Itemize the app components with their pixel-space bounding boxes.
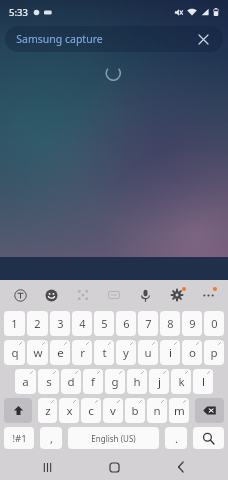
button[interactable]: x: [59, 398, 79, 423]
staticText: z: [45, 403, 51, 419]
staticText: x: [66, 403, 73, 419]
button[interactable]: Clear search: [194, 30, 212, 48]
button[interactable]: Shift: [4, 398, 32, 423]
staticText: j: [158, 374, 161, 390]
staticText: 4: [79, 316, 86, 331]
button[interactable]: j: [149, 369, 169, 394]
button[interactable]: 6: [116, 311, 136, 336]
button[interactable]: 1: [4, 311, 25, 336]
button[interactable]: ,: [40, 427, 62, 449]
button[interactable]: 5: [94, 311, 114, 336]
staticText: o: [189, 345, 196, 361]
staticText: 5:33: [9, 6, 28, 19]
button[interactable]: m: [169, 398, 189, 423]
button[interactable]: v: [103, 398, 123, 423]
staticText: 9: [189, 316, 196, 331]
button[interactable]: s: [38, 369, 59, 394]
button[interactable]: Voice input: [134, 284, 156, 306]
button[interactable]: Clipboard: [103, 284, 125, 306]
staticText: 5: [101, 316, 108, 331]
button[interactable]: a: [15, 369, 36, 394]
button[interactable]: o: [182, 340, 202, 365]
button[interactable]: Emoji: [40, 284, 62, 306]
staticText: y: [123, 345, 129, 361]
staticText: !#1: [12, 432, 27, 445]
button[interactable]: Search: [193, 427, 224, 449]
staticText: q: [11, 345, 19, 361]
button[interactable]: q: [4, 340, 25, 365]
staticText: 1: [11, 316, 18, 331]
staticText: k: [178, 374, 185, 390]
staticText: b: [131, 403, 139, 419]
staticText: e: [57, 345, 64, 361]
button[interactable]: Samsung capture: [5, 26, 223, 52]
staticText: i: [169, 345, 172, 361]
button[interactable]: w: [27, 340, 48, 365]
button[interactable]: p: [204, 340, 224, 365]
staticText: Samsung capture: [16, 32, 103, 46]
button[interactable]: More options: [197, 284, 219, 306]
staticText: .: [175, 431, 178, 446]
button[interactable]: u: [138, 340, 158, 365]
staticText: r: [80, 345, 85, 361]
staticText: ,: [50, 431, 53, 446]
button[interactable]: b: [125, 398, 145, 423]
button[interactable]: 9: [182, 311, 202, 336]
button[interactable]: h: [127, 369, 147, 394]
button[interactable]: f: [83, 369, 103, 394]
button[interactable]: 7: [138, 311, 158, 336]
button[interactable]: g: [105, 369, 125, 394]
staticText: u: [144, 345, 152, 361]
button[interactable]: c: [81, 398, 101, 423]
staticText: t: [102, 345, 107, 361]
button[interactable]: Translate: [9, 284, 31, 306]
button[interactable]: t: [94, 340, 114, 365]
staticText: English (US): [91, 433, 136, 444]
button[interactable]: Home: [94, 454, 134, 480]
button[interactable]: Backspace: [195, 398, 224, 423]
staticText: v: [110, 403, 116, 419]
staticText: n: [153, 403, 161, 419]
staticText: d: [67, 374, 75, 390]
staticText: g: [111, 374, 119, 390]
button[interactable]: 8: [160, 311, 180, 336]
button[interactable]: y: [116, 340, 136, 365]
staticText: 2: [34, 316, 41, 331]
button[interactable]: .: [165, 427, 187, 449]
button[interactable]: r: [72, 340, 92, 365]
button[interactable]: i: [160, 340, 180, 365]
button[interactable]: d: [61, 369, 81, 394]
staticText: s: [46, 374, 52, 390]
button[interactable]: 2: [27, 311, 48, 336]
button[interactable]: Handwriting: [72, 284, 94, 306]
button[interactable]: z: [38, 398, 57, 423]
button[interactable]: English (US): [68, 427, 159, 449]
staticText: 6: [123, 316, 130, 331]
staticText: 0: [211, 316, 218, 331]
button[interactable]: 3: [50, 311, 70, 336]
button[interactable]: e: [50, 340, 70, 365]
button[interactable]: 4: [72, 311, 92, 336]
button[interactable]: k: [171, 369, 191, 394]
staticText: 8: [167, 316, 174, 331]
staticText: m: [174, 403, 185, 419]
staticText: f: [91, 374, 95, 390]
staticText: c: [88, 403, 94, 419]
button[interactable]: Back: [161, 454, 201, 480]
button[interactable]: Recent apps: [27, 454, 67, 480]
button[interactable]: l: [193, 369, 213, 394]
staticText: h: [133, 374, 141, 390]
staticText: 7: [145, 316, 152, 331]
staticText: p: [210, 345, 218, 361]
button[interactable]: n: [147, 398, 167, 423]
button[interactable]: !#1: [4, 427, 34, 449]
button[interactable]: Keyboard settings: [166, 284, 188, 306]
staticText: a: [22, 374, 29, 390]
staticText: l: [202, 374, 205, 390]
button[interactable]: 0: [204, 311, 224, 336]
staticText: 3: [57, 316, 64, 331]
staticText: w: [33, 345, 43, 361]
